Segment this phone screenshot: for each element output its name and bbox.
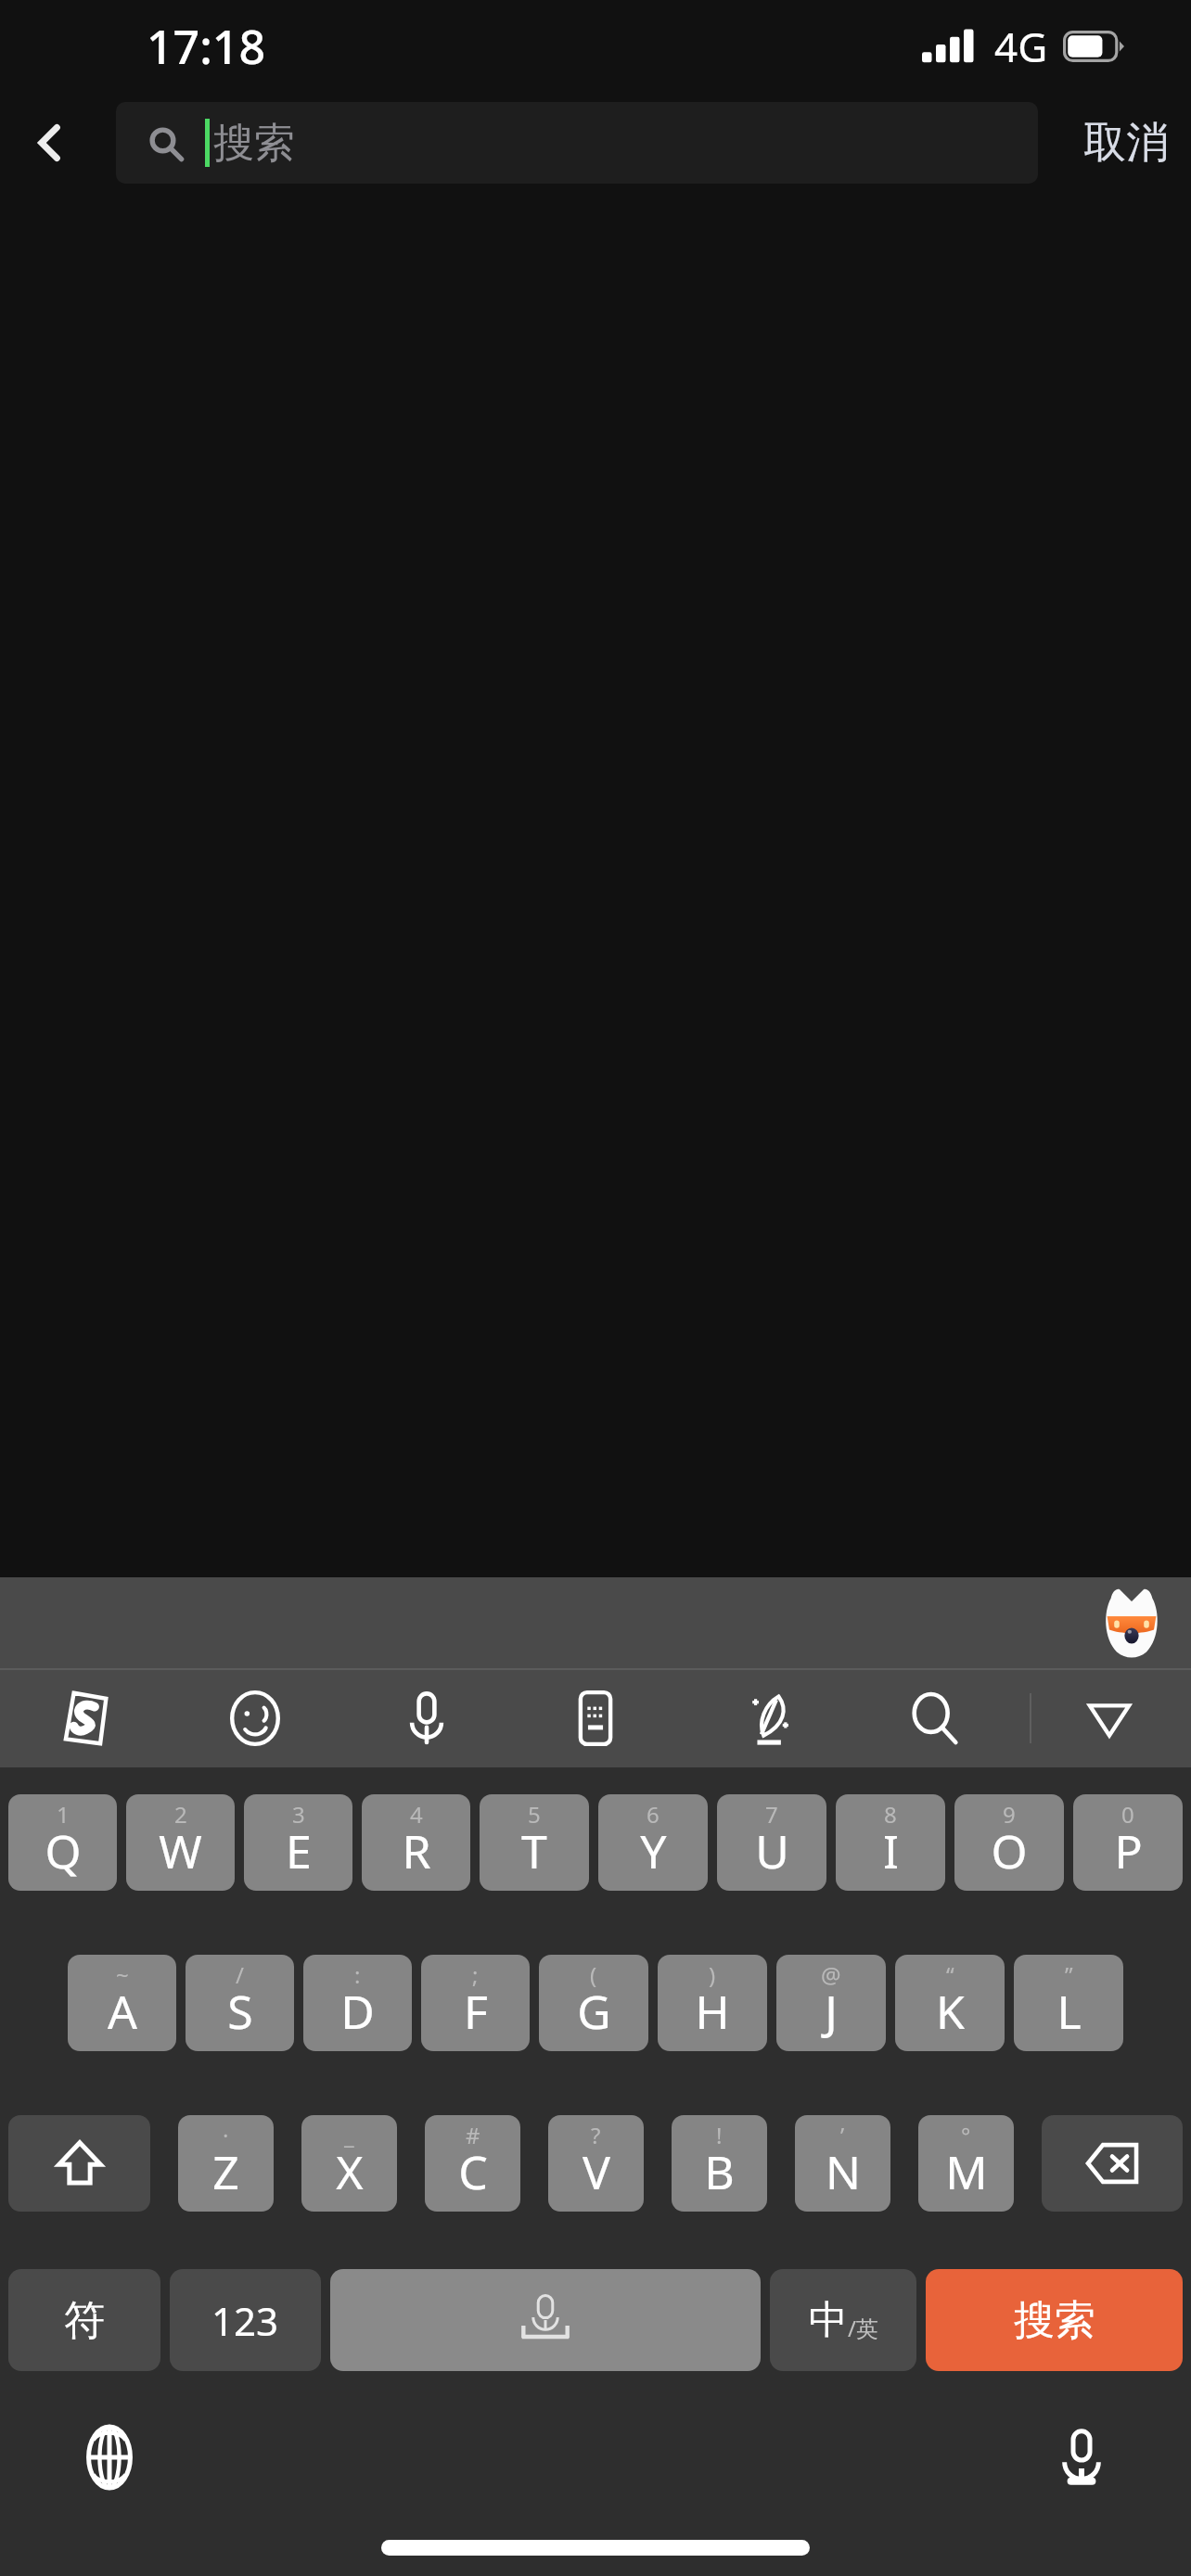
button[interactable]: Shift: [8, 2115, 150, 2212]
button[interactable]: Back: [0, 89, 100, 196]
button[interactable]: Sogou assistant: [1091, 1583, 1172, 1664]
button[interactable]: 2: [126, 1794, 235, 1891]
button[interactable]: 5: [480, 1794, 589, 1891]
button[interactable]: !: [672, 2115, 767, 2212]
button[interactable]: Backspace: [1042, 2115, 1183, 2212]
button[interactable]: Switch language: [61, 2409, 158, 2506]
staticText: 123: [211, 2294, 279, 2347]
button[interactable]: 中: [770, 2269, 916, 2371]
button[interactable]: Emoji: [201, 1669, 309, 1767]
button[interactable]: Dictation: [1033, 2409, 1130, 2506]
button[interactable]: 7: [717, 1794, 826, 1891]
button[interactable]: Search: [881, 1669, 989, 1767]
staticText: 中: [809, 2296, 848, 2345]
staticText: S: [227, 1980, 253, 2043]
staticText: 4G: [994, 19, 1048, 74]
staticText: D: [340, 1980, 375, 2043]
staticText: #: [466, 2120, 480, 2150]
staticText: T: [521, 1819, 547, 1882]
staticText: N: [826, 2140, 861, 2203]
button[interactable]: 搜索: [926, 2269, 1183, 2371]
staticText: /: [236, 1959, 244, 1990]
button[interactable]: ·: [178, 2115, 274, 2212]
button[interactable]: ”: [1014, 1955, 1123, 2051]
staticText: F: [464, 1980, 488, 2043]
staticText: 0: [1121, 1799, 1134, 1830]
button[interactable]: Space: [330, 2269, 761, 2371]
button[interactable]: 符: [8, 2269, 160, 2371]
staticText: 7: [765, 1799, 778, 1830]
button[interactable]: (: [539, 1955, 648, 2051]
staticText: H: [695, 1980, 730, 2043]
staticText: 搜索: [1014, 2295, 1095, 2346]
staticText: M: [945, 2140, 988, 2203]
button[interactable]: 搜索: [116, 102, 1038, 184]
button[interactable]: 4: [362, 1794, 470, 1891]
staticText: 1: [57, 1799, 70, 1830]
button[interactable]: °: [918, 2115, 1014, 2212]
staticText: 搜索: [213, 118, 295, 169]
staticText: O: [991, 1819, 1028, 1882]
button[interactable]: Keypad: [542, 1669, 649, 1767]
staticText: ): [709, 1959, 716, 1990]
staticText: B: [704, 2140, 735, 2203]
staticText: /英: [848, 2313, 878, 2343]
button[interactable]: 1: [8, 1794, 117, 1891]
staticText: G: [577, 1980, 611, 2043]
staticText: !: [716, 2120, 723, 2150]
staticText: E: [286, 1819, 312, 1882]
staticText: ’: [840, 2120, 845, 2150]
staticText: ~: [116, 1959, 129, 1990]
staticText: 17:18: [147, 15, 265, 78]
staticText: 8: [884, 1799, 897, 1830]
staticText: P: [1114, 1819, 1143, 1882]
button[interactable]: 取消: [1061, 89, 1191, 196]
staticText: 取消: [1083, 116, 1169, 170]
staticText: 4: [410, 1799, 423, 1830]
staticText: _: [344, 2120, 354, 2150]
button[interactable]: Collapse keyboard: [1056, 1669, 1163, 1767]
button[interactable]: /: [186, 1955, 294, 2051]
button[interactable]: ’: [795, 2115, 890, 2212]
staticText: U: [755, 1819, 789, 1882]
staticText: 3: [292, 1799, 305, 1830]
staticText: :: [354, 1959, 361, 1990]
button[interactable]: Voice input: [373, 1669, 480, 1767]
staticText: R: [402, 1819, 431, 1882]
staticText: L: [1057, 1980, 1082, 2043]
staticText: Q: [45, 1819, 82, 1882]
button[interactable]: ~: [68, 1955, 176, 2051]
button[interactable]: #: [425, 2115, 520, 2212]
staticText: I: [883, 1819, 899, 1882]
staticText: K: [936, 1980, 965, 2043]
staticText: 5: [528, 1799, 541, 1830]
staticText: @: [821, 1959, 841, 1990]
staticText: “: [946, 1959, 954, 1990]
staticText: 9: [1003, 1799, 1016, 1830]
button[interactable]: 6: [598, 1794, 708, 1891]
button[interactable]: 8: [836, 1794, 945, 1891]
staticText: W: [159, 1819, 202, 1882]
staticText: ·: [223, 2120, 229, 2150]
button[interactable]: 0: [1073, 1794, 1183, 1891]
button[interactable]: ?: [548, 2115, 644, 2212]
button[interactable]: :: [303, 1955, 412, 2051]
staticText: °: [961, 2120, 971, 2150]
button[interactable]: @: [776, 1955, 886, 2051]
button[interactable]: ;: [421, 1955, 530, 2051]
staticText: J: [825, 1980, 838, 2043]
button[interactable]: 9: [954, 1794, 1064, 1891]
staticText: 2: [174, 1799, 187, 1830]
staticText: ;: [472, 1959, 479, 1990]
button[interactable]: _: [301, 2115, 397, 2212]
staticText: Z: [212, 2140, 239, 2203]
staticText: A: [108, 1980, 137, 2043]
button[interactable]: ): [658, 1955, 767, 2051]
button[interactable]: 123: [170, 2269, 321, 2371]
button[interactable]: “: [895, 1955, 1005, 2051]
staticText: 6: [647, 1799, 660, 1830]
button[interactable]: Sogou: [32, 1669, 139, 1767]
button[interactable]: Handwriting: [713, 1669, 821, 1767]
button[interactable]: 3: [244, 1794, 352, 1891]
staticText: X: [336, 2140, 364, 2203]
